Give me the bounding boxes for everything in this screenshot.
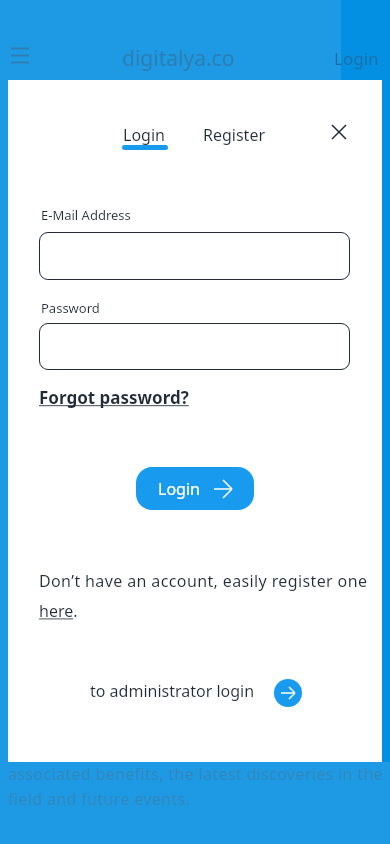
staticText: field and future events.	[8, 788, 191, 810]
button[interactable]: Login	[115, 116, 173, 154]
staticText: E-Mail Address	[41, 206, 131, 224]
staticText: digitalya.co	[122, 44, 235, 73]
button[interactable]	[11, 47, 29, 64]
button[interactable]: Register	[195, 116, 274, 154]
button[interactable]: Forgot password?	[39, 386, 189, 409]
button[interactable]	[274, 679, 302, 707]
button[interactable]: Login	[334, 47, 379, 70]
button[interactable]	[39, 323, 350, 370]
staticText: Don’t have an account, easily register o…	[39, 570, 368, 592]
button[interactable]	[39, 232, 350, 280]
staticText: associated benefits, the latest discover…	[8, 763, 383, 785]
button[interactable]: Login	[136, 467, 254, 510]
button[interactable]	[326, 119, 352, 145]
staticText: Password	[41, 299, 100, 317]
staticText: Login	[158, 478, 200, 500]
staticText: Login	[123, 124, 165, 146]
staticText: Register	[203, 124, 266, 146]
button[interactable]: here.	[39, 600, 78, 622]
staticText: to administrator login	[90, 680, 255, 702]
